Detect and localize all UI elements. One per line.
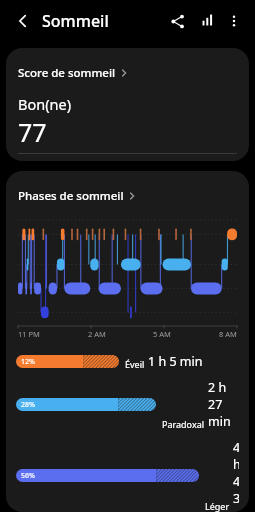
button[interactable]: More options: [221, 8, 247, 34]
staticText: Léger: [205, 500, 230, 512]
staticText: Sommeil: [42, 10, 109, 32]
button[interactable]: 56%: [16, 439, 239, 512]
staticText: 2 h 27 min: [208, 379, 239, 430]
staticText: 56%: [21, 471, 35, 481]
staticText: 2 AM: [88, 329, 106, 339]
staticText: 1 h 5 min: [148, 353, 203, 370]
staticText: 5 AM: [153, 329, 171, 339]
staticText: 12%: [21, 357, 35, 367]
button[interactable]: 12%: [16, 353, 239, 370]
staticText: Score de sommeil: [18, 65, 116, 81]
staticText: 8 AM: [219, 329, 237, 339]
staticText: 28%: [21, 400, 35, 410]
staticText: Paradoxal: [162, 418, 205, 430]
button[interactable]: Score de sommeil: [6, 48, 249, 161]
button[interactable]: Statistics: [193, 7, 221, 35]
staticText: 4 h 43 min: [233, 439, 239, 512]
button[interactable]: Back: [10, 8, 36, 34]
staticText: Bon(ne): [18, 94, 71, 114]
button[interactable]: Share: [163, 7, 191, 35]
button[interactable]: Phases de sommeil: [18, 188, 136, 204]
staticText: Phases de sommeil: [18, 188, 124, 204]
staticText: 11 PM: [18, 329, 40, 339]
staticText: Éveil: [125, 358, 145, 370]
button[interactable]: 28%: [16, 379, 239, 430]
staticText: 77: [18, 115, 47, 149]
